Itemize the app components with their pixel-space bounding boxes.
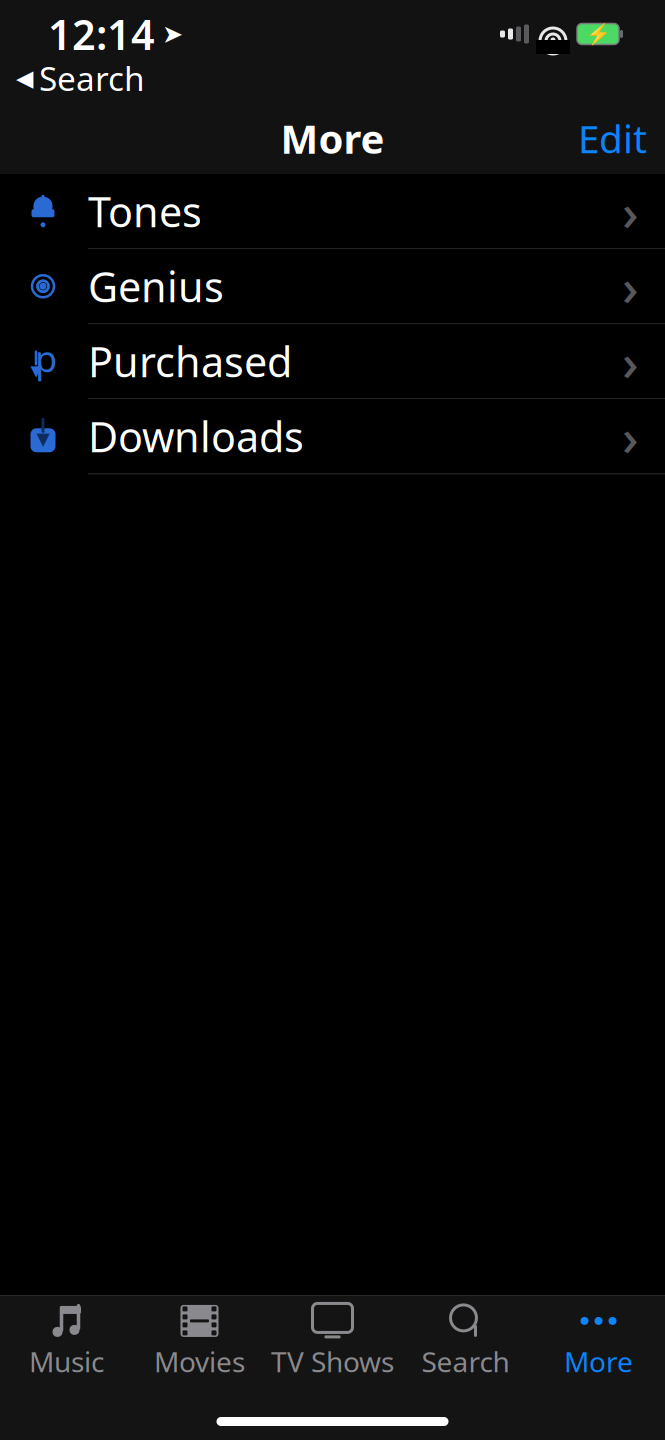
button[interactable]: ▼ [0,399,665,474]
button[interactable]: Tones [0,174,665,249]
button[interactable]: p [0,324,665,399]
staticText: ➤ [162,20,183,48]
staticText: More [280,112,384,165]
button[interactable]: TV Shows [266,1300,399,1382]
staticText: Tones [88,184,202,239]
button[interactable]: Music [0,1300,133,1382]
staticText: Movies [154,1343,245,1380]
staticText: ◀ [16,65,33,91]
staticText: Downloads [88,409,304,464]
button[interactable]: Genius [0,249,665,324]
staticText: ▼ [30,362,41,379]
staticText: More [564,1343,633,1380]
staticText: Music [29,1343,104,1380]
staticText: › [622,403,639,470]
staticText: p [35,334,57,382]
button[interactable]: Movies [133,1300,266,1382]
staticText: Genius [88,259,224,314]
button[interactable]: Search [399,1300,532,1382]
staticText: › [622,178,639,245]
staticText: Edit [578,113,647,164]
staticText: ⚡ [585,23,610,45]
staticText: Search [421,1343,509,1380]
staticText: TV Shows [271,1343,394,1380]
button[interactable]: ◀ [0,54,145,102]
staticText: Search [39,56,145,100]
staticText: 12:14 [48,7,155,61]
staticText: ▼ [36,429,49,449]
button[interactable]: Edit [560,105,665,172]
button[interactable]: More [532,1300,665,1382]
staticText: › [622,253,639,320]
staticText: Purchased [88,334,292,389]
staticText: › [622,328,639,395]
